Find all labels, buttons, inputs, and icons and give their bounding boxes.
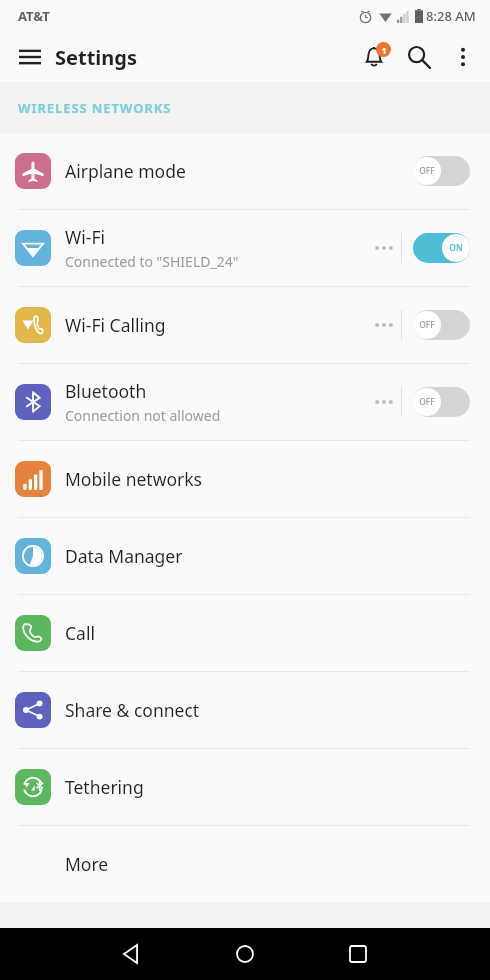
button[interactable]: Bluetooth options (367, 376, 401, 428)
button[interactable]: Wi-Fi toggle (413, 233, 470, 263)
staticText: OFF (419, 165, 435, 177)
button[interactable]: Wi-Fi Calling options (367, 299, 401, 351)
staticText: Settings (55, 44, 137, 71)
button[interactable]: Tethering (0, 749, 490, 825)
button[interactable]: Bluetooth toggle (413, 387, 470, 417)
staticText: 1 (381, 44, 387, 56)
button[interactable]: More options (442, 36, 484, 78)
staticText: WIRELESS NETWORKS (18, 99, 172, 117)
button[interactable]: More (0, 826, 490, 902)
button[interactable]: Navigation menu (10, 37, 50, 77)
button[interactable]: Search (396, 34, 442, 80)
staticText: 8:28 AM (426, 7, 476, 25)
button[interactable]: Back (76, 928, 188, 980)
button[interactable]: Wi-Fi options (367, 222, 401, 274)
staticText: Wi-Fi Calling (65, 313, 166, 337)
button[interactable]: Wi-Fi Calling toggle (413, 310, 470, 340)
button[interactable]: Home (188, 928, 301, 980)
button[interactable]: Wi-Fi Calling (0, 287, 490, 363)
staticText: Airplane mode (65, 159, 186, 183)
staticText: Mobile networks (65, 467, 202, 491)
staticText: Share & connect (65, 698, 200, 722)
button[interactable]: Recent apps (301, 928, 414, 980)
staticText: More (65, 852, 109, 876)
staticText: Tethering (65, 775, 144, 799)
button[interactable]: Notifications (352, 35, 396, 79)
staticText: Call (65, 621, 95, 645)
staticText: OFF (419, 396, 435, 408)
button[interactable]: Data Manager (0, 518, 490, 594)
staticText: ON (449, 242, 463, 254)
button[interactable]: Share & connect (0, 672, 490, 748)
button[interactable]: Wi-Fi (0, 210, 490, 286)
button[interactable]: Call (0, 595, 490, 671)
staticText: Bluetooth (65, 379, 147, 403)
staticText: Wi-Fi (65, 225, 106, 249)
staticText: Data Manager (65, 544, 183, 568)
button[interactable]: Bluetooth (0, 364, 490, 440)
staticText: Connection not allowed (65, 406, 221, 425)
button[interactable]: Mobile networks (0, 441, 490, 517)
staticText: Connected to "SHIELD_24" (65, 252, 239, 271)
button[interactable]: Airplane mode toggle (413, 156, 470, 186)
button[interactable]: Airplane mode (0, 133, 490, 209)
staticText: AT&T (18, 7, 50, 25)
staticText: OFF (419, 319, 435, 331)
